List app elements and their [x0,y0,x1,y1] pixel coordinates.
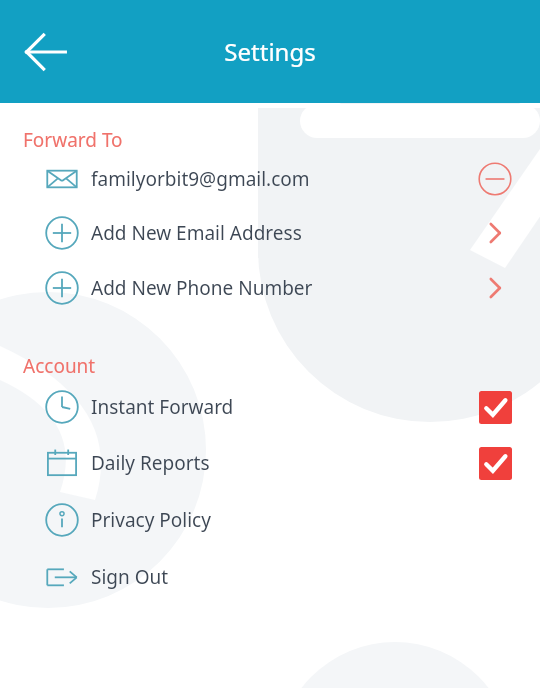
button[interactable]: Privacy Policy [0,491,540,548]
staticText: Privacy Policy [91,507,512,533]
button[interactable]: Sign Out [0,548,540,605]
button[interactable]: Instant Forward [0,379,540,435]
button[interactable]: Add New Phone Number [0,260,540,315]
button[interactable]: Open [478,271,512,305]
staticText: familyorbit9@gmail.com [91,166,478,192]
staticText: Instant Forward [91,394,478,420]
button[interactable]: Daily Reports [0,435,540,491]
staticText: Add New Email Address [91,220,478,246]
button[interactable]: Back [10,16,82,88]
staticText: Forward To [23,127,123,153]
button[interactable]: Toggle [478,446,512,480]
staticText: Account [23,353,96,379]
staticText: Daily Reports [91,450,478,476]
staticText: Settings [224,35,316,68]
button[interactable]: Toggle [478,390,512,424]
button[interactable]: familyorbit9@gmail.com [0,153,540,205]
button[interactable]: Remove email [478,162,512,196]
staticText: Sign Out [91,564,512,590]
button[interactable]: Add New Email Address [0,205,540,260]
staticText: Add New Phone Number [91,275,478,301]
button[interactable]: Open [478,216,512,250]
